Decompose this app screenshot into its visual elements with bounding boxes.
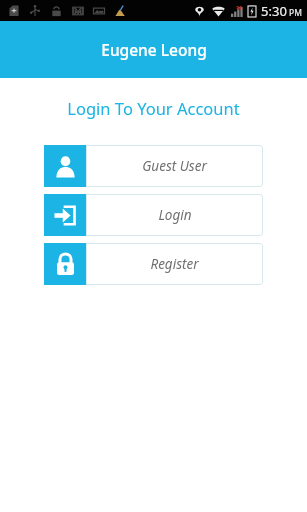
staticText: Register bbox=[150, 255, 199, 273]
button[interactable]: Register bbox=[44, 243, 263, 285]
staticText: 5:30 bbox=[261, 2, 287, 20]
staticText: Guest User bbox=[142, 157, 207, 175]
button[interactable]: Login bbox=[44, 194, 263, 236]
staticText: Eugene Leong bbox=[101, 39, 207, 60]
staticText: Login To Your Account bbox=[0, 97, 307, 119]
staticText: PM bbox=[289, 7, 302, 19]
button[interactable]: Guest User bbox=[44, 145, 263, 187]
staticText: Login bbox=[158, 206, 192, 224]
